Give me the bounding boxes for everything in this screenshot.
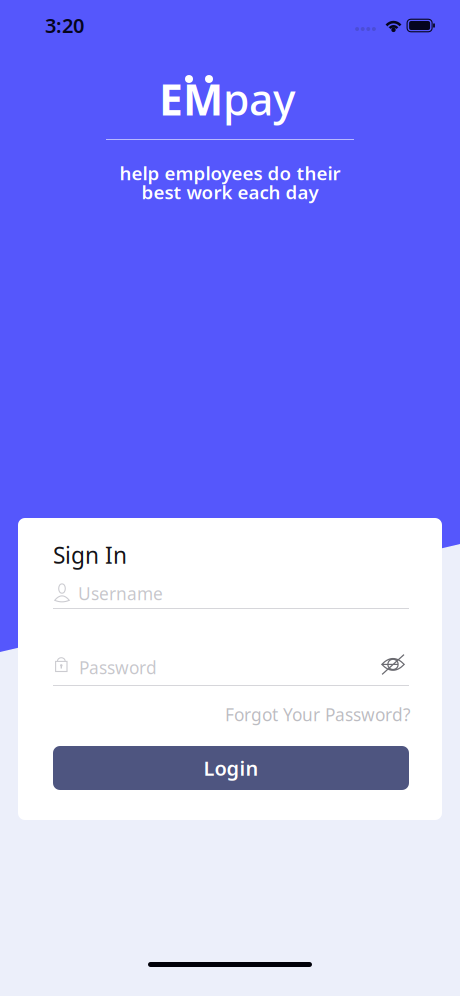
- staticText: Password: [79, 656, 157, 679]
- button[interactable]: Login: [53, 746, 409, 790]
- staticText: best work each day: [141, 180, 318, 204]
- staticText: Forgot Your Password?: [225, 703, 411, 726]
- staticText: Username: [78, 582, 163, 605]
- staticText: Login: [203, 755, 258, 781]
- button[interactable]: Forgot Your Password?: [225, 700, 411, 729]
- staticText: EM: [159, 71, 223, 127]
- staticText: help employees do their: [119, 161, 340, 185]
- button[interactable]: Show password: [373, 646, 413, 678]
- staticText: Sign In: [53, 540, 127, 570]
- staticText: pay: [223, 71, 296, 127]
- staticText: 3:20: [45, 12, 84, 39]
